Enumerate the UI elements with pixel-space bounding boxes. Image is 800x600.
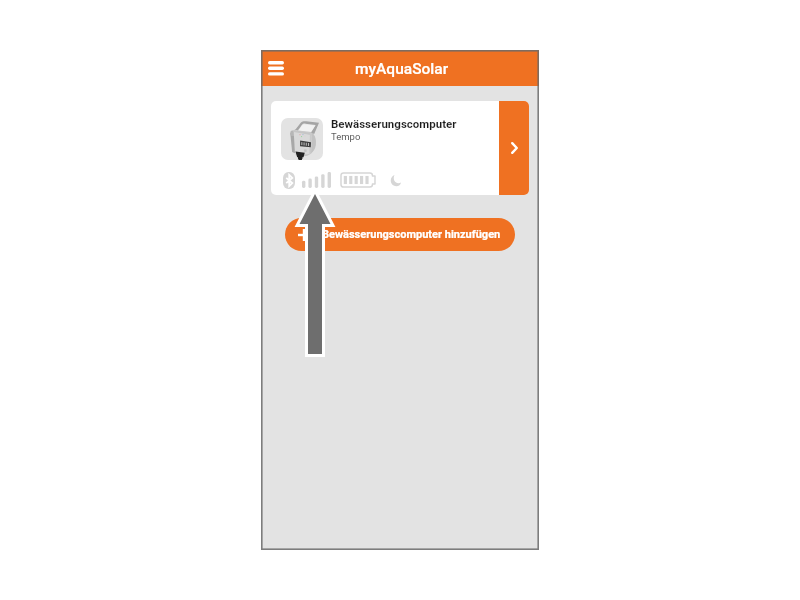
button[interactable]: Bewässerungscomputer — [271, 101, 499, 195]
staticText: myAquaSolar — [355, 60, 449, 78]
staticText: Bewässerungscomputer hinzufügen — [322, 228, 501, 241]
staticText: Bewässerungscomputer — [331, 117, 457, 130]
button[interactable]: Open navigation menu — [261, 52, 290, 84]
staticText: Tempo — [331, 131, 361, 142]
button[interactable]: Open device details — [499, 101, 529, 195]
button[interactable]: Bewässerungscomputer hinzufügen — [285, 218, 515, 251]
